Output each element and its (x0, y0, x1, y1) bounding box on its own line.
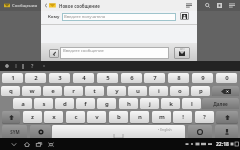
button[interactable]: l (182, 98, 201, 109)
button[interactable]: v (87, 111, 106, 123)
staticText: 4 (82, 74, 86, 82)
button[interactable]: Contacts (180, 12, 189, 20)
button[interactable]: 2 (25, 73, 46, 83)
button[interactable]: ! (173, 111, 192, 123)
button[interactable]: 3 (49, 73, 70, 83)
button[interactable]: k (161, 98, 180, 109)
button[interactable]: More options (226, 0, 237, 11)
button[interactable]: h (119, 98, 138, 109)
staticText: w (29, 87, 35, 95)
button[interactable] (2, 111, 20, 123)
staticText: e (51, 87, 55, 95)
staticText: a (21, 100, 25, 108)
staticText: h (127, 100, 131, 108)
button[interactable]: 1 (2, 73, 23, 83)
button[interactable]: • English (52, 125, 185, 139)
button[interactable]: Options (40, 61, 47, 71)
button[interactable]: 7 (144, 73, 165, 83)
staticText: z (31, 113, 34, 121)
button[interactable]: e (43, 86, 62, 96)
staticText: 2 (34, 74, 38, 82)
button[interactable]: t (85, 86, 104, 96)
button[interactable]: 0 (216, 73, 237, 83)
staticText: t (93, 87, 96, 95)
button[interactable]: Attach (49, 49, 59, 58)
staticText: 0/1 (180, 47, 185, 51)
staticText: 5 (106, 74, 110, 82)
button[interactable]: Введите сообщение (60, 47, 169, 59)
button[interactable] (30, 125, 51, 139)
button[interactable] (215, 125, 238, 139)
button[interactable]: Home (21, 139, 32, 150)
button[interactable] (212, 86, 239, 96)
button[interactable]: Back (8, 139, 19, 150)
button[interactable]: f (76, 98, 95, 109)
button[interactable]: u (128, 86, 147, 96)
button[interactable]: ? (195, 111, 214, 123)
button[interactable]: Сообщения (0, 0, 41, 11)
button[interactable]: Insert (214, 0, 225, 11)
staticText: 22:18 (216, 141, 229, 148)
button[interactable]: i (149, 86, 168, 96)
staticText: ? (31, 63, 34, 70)
button[interactable]: 4 (73, 73, 94, 83)
button[interactable]: a (13, 98, 32, 109)
button[interactable]: 9 (192, 73, 213, 83)
button[interactable]: Cursor left (12, 61, 19, 71)
button[interactable]: Keyboard settings (3, 61, 11, 71)
button[interactable] (0, 0, 41, 11)
button[interactable]: b (109, 111, 128, 123)
button[interactable]: o (170, 86, 189, 96)
staticText: g (105, 100, 109, 108)
staticText: d (63, 100, 67, 108)
button[interactable]: Введите получателя (62, 13, 176, 21)
staticText: Введите сообщение (63, 48, 104, 54)
staticText: k (169, 100, 173, 108)
button[interactable]: 8 (168, 73, 189, 83)
button[interactable]: Новое сообщение (43, 0, 100, 11)
button[interactable]: x (44, 111, 63, 123)
button[interactable]: SYM (2, 125, 27, 139)
staticText: Далее (213, 101, 228, 107)
button[interactable]: Cursor right (19, 61, 26, 71)
button[interactable] (188, 125, 212, 139)
button[interactable]: Send (174, 47, 190, 59)
button[interactable]: p (191, 86, 210, 96)
staticText: Кому (48, 14, 60, 20)
staticText: p (199, 87, 203, 95)
button[interactable]: y (107, 86, 126, 96)
staticText: Введите получателя (64, 14, 106, 20)
button[interactable]: Recent apps (33, 139, 44, 150)
button[interactable]: w (22, 86, 41, 96)
staticText: r (72, 87, 75, 95)
button[interactable]: q (1, 86, 20, 96)
staticText: q (9, 87, 13, 95)
button[interactable]: Далее (202, 98, 239, 109)
staticText: 3 (58, 74, 62, 82)
button[interactable]: r (64, 86, 83, 96)
button[interactable]: 5 (97, 73, 118, 83)
staticText: v (95, 113, 99, 121)
button[interactable]: c (66, 111, 85, 123)
staticText: 0 (225, 74, 229, 82)
staticText: Новое сообщение (59, 3, 100, 9)
button[interactable]: Search (202, 0, 213, 11)
button[interactable]: g (97, 98, 116, 109)
staticText: 1 (11, 74, 15, 82)
button[interactable]: Help (28, 61, 36, 71)
staticText: Сообщения (12, 3, 38, 9)
staticText: b (117, 113, 121, 121)
staticText: s (42, 100, 46, 108)
staticText: 8 (177, 74, 181, 82)
button[interactable]: Screenshot (45, 139, 56, 150)
button[interactable]: Menu (183, 0, 194, 11)
button[interactable]: n (130, 111, 149, 123)
button[interactable] (216, 111, 238, 123)
button[interactable]: z (23, 111, 42, 123)
button[interactable]: 6 (121, 73, 142, 83)
staticText: n (138, 113, 142, 121)
button[interactable]: m (152, 111, 171, 123)
button[interactable]: j (140, 98, 159, 109)
button[interactable]: s (34, 98, 53, 109)
button[interactable]: d (55, 98, 74, 109)
